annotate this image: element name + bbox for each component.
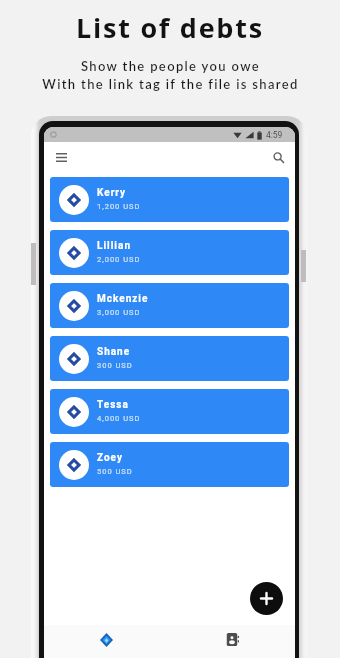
staticText: 4,000 USD bbox=[97, 414, 141, 423]
button[interactable]: Zoey bbox=[50, 442, 289, 487]
button[interactable]: Lillian bbox=[50, 230, 289, 275]
button[interactable]: Mckenzie bbox=[50, 283, 289, 328]
button[interactable]: Search bbox=[267, 146, 289, 168]
button[interactable]: Open navigation menu bbox=[50, 146, 72, 168]
button[interactable]: Tessa bbox=[50, 389, 289, 434]
staticText: 300 USD bbox=[97, 361, 133, 370]
staticText: List of debts bbox=[76, 9, 264, 46]
staticText: 2,000 USD bbox=[97, 255, 141, 264]
staticText: Tessa bbox=[97, 399, 129, 411]
button[interactable]: Debts bbox=[44, 625, 169, 658]
button[interactable]: Shane bbox=[50, 336, 289, 381]
button[interactable]: Add debt bbox=[250, 582, 283, 615]
staticText: 1,200 USD bbox=[97, 202, 141, 211]
staticText: Mckenzie bbox=[97, 293, 149, 305]
button[interactable]: Contacts bbox=[169, 625, 295, 658]
staticText: Shane bbox=[97, 346, 131, 358]
staticText: Zoey bbox=[97, 452, 123, 464]
staticText: Lillian bbox=[97, 240, 131, 252]
staticText: Show the people you owe With the link ta… bbox=[42, 58, 299, 92]
staticText: 500 USD bbox=[97, 467, 133, 476]
staticText: Kerry bbox=[97, 187, 127, 199]
button[interactable]: Kerry bbox=[50, 177, 289, 222]
staticText: 4:59 bbox=[266, 130, 283, 140]
staticText: 3,000 USD bbox=[97, 308, 141, 317]
